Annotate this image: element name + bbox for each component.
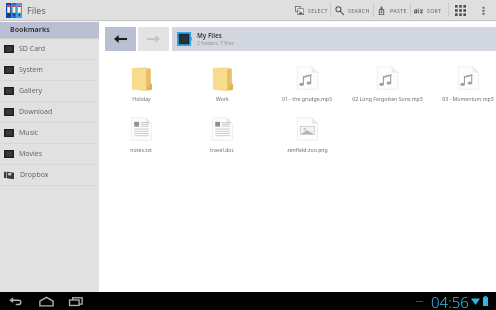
staticText: Gallery: [19, 86, 43, 96]
button[interactable]: Work: [184, 60, 260, 105]
button[interactable]: 03 - Momentum.mp3: [430, 60, 496, 105]
button[interactable]: notes.txt: [103, 111, 179, 156]
button[interactable]: Movies: [0, 144, 99, 164]
button[interactable]: 01 - the grudge.mp3: [269, 60, 345, 105]
staticText: Bookmarks: [10, 25, 50, 35]
staticText: zenfield-zoo.png: [287, 146, 328, 153]
button[interactable]: Home: [37, 292, 55, 310]
button[interactable]: Holiday: [103, 60, 179, 105]
staticText: 2 folders, 7 files: [197, 40, 234, 47]
button[interactable]: SD Card: [0, 39, 99, 59]
button[interactable]: SEARCH: [331, 0, 373, 20]
staticText: SEARCH: [348, 7, 370, 14]
button[interactable]: Dropbox: [0, 165, 99, 185]
button[interactable]: Download: [0, 102, 99, 122]
staticText: 01 - the grudge.mp3: [282, 95, 332, 102]
staticText: travel.doc: [210, 146, 234, 153]
staticText: Download: [19, 107, 53, 117]
staticText: notes.txt: [130, 146, 152, 153]
button[interactable]: Gallery: [0, 81, 99, 101]
button[interactable]: Apps: [449, 0, 471, 20]
staticText: 02 Long Forgotten Sons.mp3: [352, 95, 423, 102]
staticText: 03 - Momentum.mp3: [442, 95, 494, 102]
button[interactable]: System: [0, 60, 99, 80]
staticText: Files: [27, 4, 46, 16]
button[interactable]: Forward: [138, 27, 169, 51]
button[interactable]: Recents: [67, 292, 85, 310]
staticText: Dropbox: [20, 170, 49, 180]
staticText: SD Card: [19, 44, 46, 54]
button[interactable]: SELECT: [290, 0, 330, 20]
button[interactable]: 02 Long Forgotten Sons.mp3: [349, 60, 425, 105]
button[interactable]: My Files: [172, 27, 496, 51]
staticText: Movies: [19, 149, 43, 159]
staticText: 04:56: [431, 292, 469, 310]
button[interactable]: Back: [105, 27, 136, 51]
button[interactable]: travel.doc: [184, 111, 260, 156]
staticText: PASTE: [390, 7, 407, 14]
staticText: Work: [216, 95, 229, 102]
button[interactable]: Back: [7, 292, 25, 310]
staticText: SORT: [427, 7, 442, 14]
button[interactable]: Files: [0, 0, 52, 20]
button[interactable]: More options: [471, 0, 496, 20]
staticText: System: [19, 65, 43, 75]
staticText: Holiday: [132, 95, 151, 102]
button[interactable]: Music: [0, 123, 99, 143]
staticText: My Files: [197, 31, 222, 39]
button[interactable]: zenfield-zoo.png: [269, 111, 345, 156]
staticText: SELECT: [308, 7, 328, 14]
button[interactable]: SORT: [411, 0, 448, 20]
staticText: Music: [19, 128, 39, 138]
button[interactable]: PASTE: [374, 0, 410, 20]
